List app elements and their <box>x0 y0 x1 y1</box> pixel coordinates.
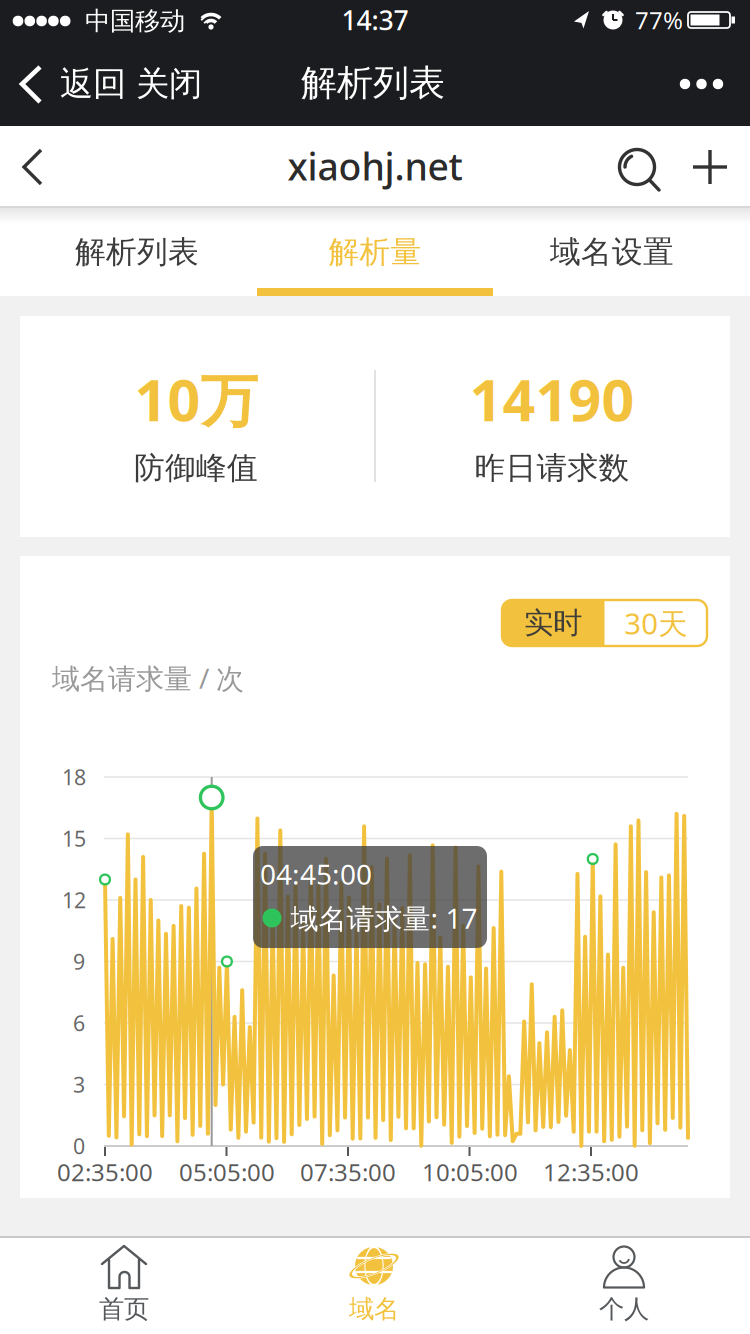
staticText: 3 <box>73 1070 85 1099</box>
staticText: 域名请求量: 17 <box>290 899 477 937</box>
staticText: 12:35:00 <box>543 1156 639 1188</box>
staticText: 12 <box>62 886 86 914</box>
staticText: 05:05:00 <box>179 1156 275 1188</box>
staticText: 域名 <box>349 1293 399 1324</box>
button[interactable]: 解析量 <box>255 208 495 296</box>
staticText: 昨日请求数 <box>474 449 629 487</box>
staticText: 解析量 <box>328 233 421 271</box>
staticText: 防御峰值 <box>134 449 258 487</box>
staticText: 解析列表 <box>301 61 445 105</box>
staticText: 域名设置 <box>550 233 674 271</box>
staticText: 18 <box>62 763 86 791</box>
button[interactable]: 解析列表 <box>17 208 257 296</box>
staticText: 中国移动 <box>85 5 185 36</box>
staticText: 14190 <box>469 361 634 437</box>
staticText: 14:37 <box>341 2 408 38</box>
staticText: 返回 关闭 <box>60 63 202 104</box>
staticText: 15 <box>62 824 86 853</box>
button[interactable]: 更多 <box>666 52 738 116</box>
staticText: 30天 <box>624 603 687 642</box>
staticText: 域名请求量 / 次 <box>52 659 244 697</box>
button[interactable]: 首页 <box>0 1238 249 1334</box>
staticText: xiaohj.net <box>287 141 462 191</box>
staticText: 07:35:00 <box>300 1156 396 1188</box>
staticText: 04:45:00 <box>260 855 372 893</box>
staticText: 实时 <box>524 605 582 641</box>
button[interactable]: 域名 <box>249 1238 499 1334</box>
button[interactable]: 返回 <box>7 135 59 199</box>
staticText: 10万 <box>134 361 257 437</box>
button[interactable]: 返回 关闭 <box>8 46 214 122</box>
staticText: 9 <box>73 947 85 976</box>
button[interactable]: 个人 <box>499 1238 749 1334</box>
button[interactable]: 30天 <box>604 600 707 646</box>
staticText: 77% <box>635 4 683 36</box>
button[interactable]: 实时 <box>502 600 604 646</box>
button[interactable]: 添加 <box>682 139 738 195</box>
staticText: 解析列表 <box>75 233 199 271</box>
button[interactable]: 搜索 <box>609 139 669 199</box>
staticText: 02:35:00 <box>57 1156 153 1188</box>
staticText: 6 <box>73 1009 85 1037</box>
button[interactable]: 域名设置 <box>492 208 732 296</box>
staticText: 首页 <box>99 1293 149 1324</box>
staticText: 0 <box>73 1132 85 1160</box>
staticText: 个人 <box>599 1293 649 1324</box>
staticText: 10:05:00 <box>422 1156 518 1188</box>
